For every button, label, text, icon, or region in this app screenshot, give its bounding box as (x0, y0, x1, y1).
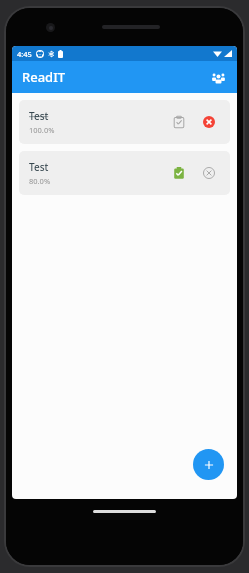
button[interactable]: Delete (198, 111, 220, 133)
staticText: Test (29, 109, 49, 123)
button[interactable]: Test (19, 151, 230, 195)
button[interactable]: Groups (207, 66, 229, 88)
button[interactable]: Delete (198, 162, 220, 184)
button[interactable]: Add (193, 449, 224, 480)
staticText: 100.0% (29, 125, 55, 135)
staticText: ReadIT (22, 68, 66, 86)
button[interactable]: Mark incomplete (168, 111, 190, 133)
staticText: 4:45 (17, 49, 32, 59)
staticText: Test (29, 160, 49, 174)
button[interactable]: Mark complete (168, 162, 190, 184)
staticText: 80.0% (29, 176, 51, 186)
button[interactable]: Test (19, 100, 230, 144)
